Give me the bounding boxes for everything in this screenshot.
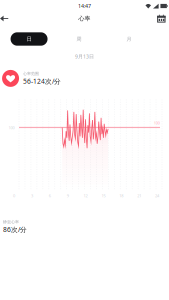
staticText: 12	[83, 193, 87, 198]
staticText: 14:47	[78, 2, 91, 10]
staticText: 心率	[78, 15, 90, 22]
staticText: 6	[49, 193, 51, 198]
staticText: 100	[154, 120, 160, 126]
staticText: 9	[67, 193, 69, 198]
staticText: 0	[13, 193, 15, 198]
button[interactable]: Back	[0, 13, 14, 24]
button[interactable]: 周	[54, 32, 104, 46]
button[interactable]: 日	[4, 32, 54, 46]
staticText: 月	[127, 36, 132, 42]
staticText: 86次/分	[3, 225, 27, 234]
button[interactable]: Calendar	[151, 12, 169, 25]
staticText: 静息心率	[3, 219, 19, 224]
staticText: 100	[9, 125, 15, 130]
staticText: 3	[31, 193, 33, 198]
staticText: 18	[119, 193, 123, 198]
button[interactable]: 月	[104, 32, 154, 46]
staticText: 周	[77, 36, 82, 42]
staticText: 56-124次/分	[23, 77, 61, 86]
staticText: 9月13日	[75, 53, 94, 60]
staticText: 24	[155, 193, 159, 198]
staticText: 15	[101, 193, 105, 198]
staticText: 日	[27, 36, 32, 42]
staticText: 21	[137, 193, 141, 198]
staticText: 心率范围	[23, 71, 39, 76]
